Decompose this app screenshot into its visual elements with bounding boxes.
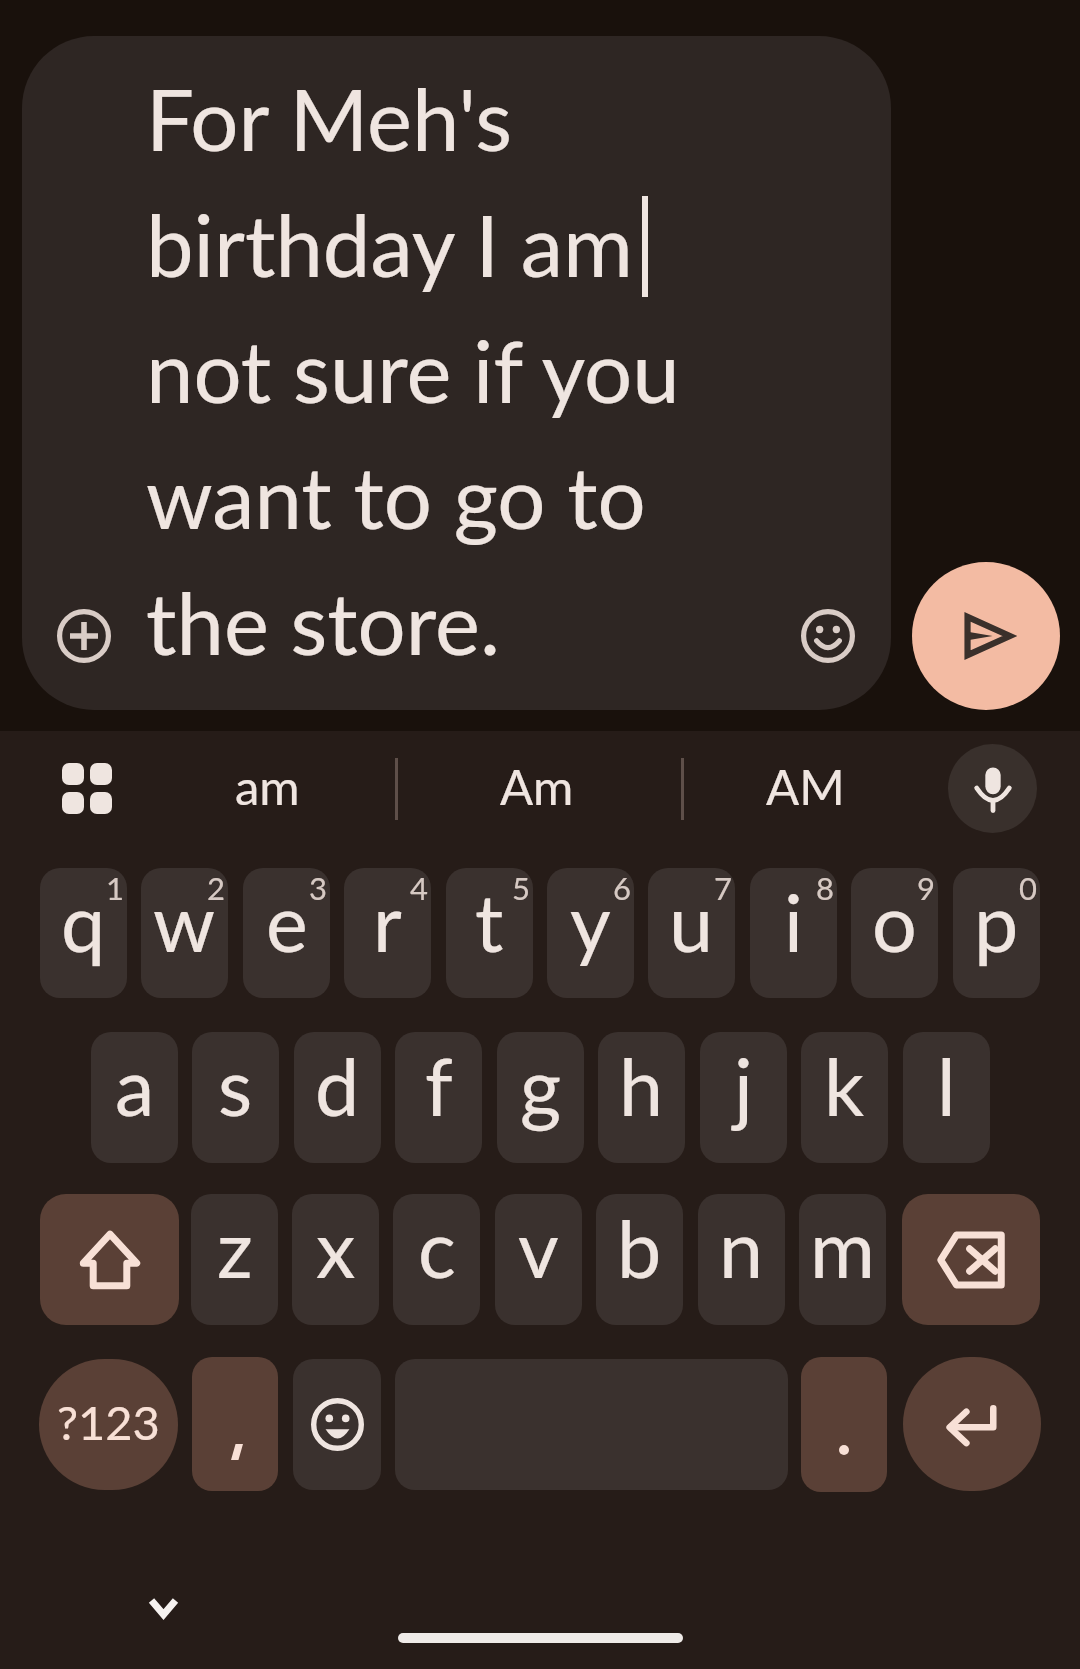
button[interactable]: ?123 (39, 1359, 178, 1490)
staticText: x (316, 1200, 356, 1295)
staticText: e (266, 874, 308, 969)
staticText: n (719, 1200, 764, 1295)
staticText: d (315, 1038, 360, 1133)
staticText: 5 (512, 869, 530, 906)
button[interactable]: s (192, 1032, 279, 1163)
button[interactable]: Switch to emoji keyboard (293, 1359, 381, 1490)
button[interactable]: c (393, 1194, 480, 1325)
button[interactable]: Am (401, 731, 672, 847)
button[interactable]: For Meh's birthday I am not sure if you … (22, 36, 891, 710)
staticText: 8 (816, 869, 834, 906)
staticText: 6 (613, 869, 631, 906)
staticText: u (669, 874, 714, 969)
button[interactable]: Comma (192, 1357, 278, 1491)
button[interactable]: 5 (446, 868, 533, 998)
button[interactable]: AM (670, 731, 941, 847)
staticText: AM (766, 757, 845, 816)
button[interactable]: 4 (344, 868, 431, 998)
staticText: 7 (714, 869, 732, 906)
button[interactable]: j (700, 1032, 787, 1163)
button[interactable]: h (598, 1032, 685, 1163)
button[interactable]: b (596, 1194, 683, 1325)
staticText: c (418, 1200, 456, 1295)
staticText: t (475, 874, 504, 969)
staticText: s (218, 1038, 253, 1133)
staticText: w (153, 874, 216, 969)
button[interactable]: 9 (851, 868, 938, 998)
button[interactable]: n (698, 1194, 785, 1325)
button[interactable]: am (132, 731, 403, 847)
staticText: v (518, 1200, 559, 1295)
button[interactable]: Insert emoji (792, 600, 864, 672)
staticText: a (115, 1038, 155, 1133)
staticText: ?123 (57, 1394, 160, 1450)
button[interactable]: Add attachment (48, 600, 120, 672)
button[interactable]: Enter (903, 1357, 1041, 1491)
button[interactable]: 0 (953, 868, 1040, 998)
button[interactable]: l (903, 1032, 990, 1163)
staticText: 1 (106, 869, 124, 906)
staticText: 0 (1019, 869, 1037, 906)
button[interactable]: 7 (648, 868, 735, 998)
button[interactable]: 3 (243, 868, 330, 998)
staticText: j (734, 1038, 753, 1133)
button[interactable]: a (91, 1032, 178, 1163)
button[interactable]: Backspace (902, 1194, 1040, 1325)
button[interactable]: Send (912, 562, 1060, 710)
button[interactable]: Hide keyboard (127, 1571, 199, 1643)
button[interactable]: f (395, 1032, 482, 1163)
staticText: q (61, 874, 106, 969)
button[interactable]: d (294, 1032, 381, 1163)
button[interactable]: 6 (547, 868, 634, 998)
staticText: m (810, 1200, 875, 1295)
staticText: 2 (207, 869, 225, 906)
staticText: Am (500, 757, 574, 816)
button[interactable]: 2 (141, 868, 228, 998)
staticText: h (619, 1038, 664, 1133)
staticText: b (617, 1200, 662, 1295)
button[interactable]: 1 (40, 868, 127, 998)
staticText: k (824, 1038, 865, 1133)
staticText: i (784, 874, 803, 969)
staticText: l (937, 1038, 956, 1133)
button[interactable]: Voice input (948, 744, 1037, 833)
button[interactable]: z (191, 1194, 278, 1325)
button[interactable]: Shift (40, 1194, 179, 1325)
staticText: r (373, 874, 402, 969)
button[interactable]: 8 (750, 868, 837, 998)
staticText: For Meh's birthday I am not sure if you … (146, 67, 680, 673)
staticText: am (235, 757, 300, 816)
staticText: g (520, 1038, 562, 1133)
staticText: p (974, 874, 1019, 969)
button[interactable]: v (495, 1194, 582, 1325)
staticText: f (425, 1038, 453, 1133)
button[interactable]: x (292, 1194, 379, 1325)
button[interactable]: m (799, 1194, 886, 1325)
staticText: o (872, 874, 917, 969)
staticText: 9 (917, 869, 935, 906)
staticText: 4 (410, 869, 428, 906)
button[interactable]: k (801, 1032, 888, 1163)
button[interactable]: g (497, 1032, 584, 1163)
staticText: 3 (309, 869, 327, 906)
staticText: z (217, 1200, 253, 1295)
button[interactable]: Period (801, 1357, 887, 1492)
button[interactable]: Keyboard toolbar (53, 754, 121, 822)
staticText: y (570, 874, 611, 969)
